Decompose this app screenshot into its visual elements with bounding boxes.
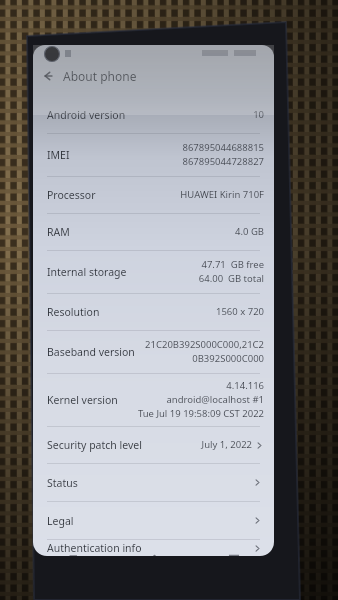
- button[interactable]: Authentication info: [33, 540, 274, 556]
- button[interactable]: RAM: [33, 214, 274, 250]
- staticText: Tue Jul 19 19:58:09 CST 2022: [137, 407, 264, 420]
- staticText: 867895044688815: [182, 141, 264, 154]
- staticText: About phone: [63, 68, 137, 84]
- staticText: Android version: [47, 108, 126, 122]
- staticText: Processor: [47, 188, 96, 202]
- staticText: HUAWEI Kirin 710F: [180, 188, 264, 201]
- staticText: 47.71 GB free: [201, 258, 264, 271]
- button[interactable]: Resolution: [33, 294, 274, 330]
- staticText: July 1, 2022: [201, 438, 252, 451]
- button[interactable]: Back: [33, 61, 63, 91]
- button[interactable]: Baseband version: [33, 331, 274, 373]
- staticText: 4.0 GB: [235, 225, 264, 238]
- staticText: Resolution: [47, 305, 100, 319]
- button[interactable]: IMEI: [33, 134, 274, 176]
- staticText: 1560 x 720: [215, 305, 264, 318]
- button[interactable]: Processor: [33, 177, 274, 213]
- button[interactable]: Legal: [33, 502, 274, 539]
- button[interactable]: Internal storage: [33, 251, 274, 293]
- staticText: Security patch level: [47, 438, 142, 452]
- staticText: android@localhost #1: [166, 393, 264, 406]
- staticText: Authentication info: [47, 541, 142, 555]
- staticText: 10: [253, 108, 264, 121]
- staticText: Kernel version: [47, 393, 118, 407]
- button[interactable]: Kernel version: [33, 374, 274, 426]
- staticText: 867895044728827: [182, 155, 264, 168]
- button[interactable]: Status: [33, 464, 274, 501]
- staticText: Legal: [47, 514, 74, 528]
- staticText: 64.00 GB total: [198, 272, 264, 285]
- staticText: Baseband version: [47, 345, 135, 359]
- staticText: 4.14.116: [226, 379, 264, 392]
- staticText: 0B392S000C000: [192, 352, 264, 365]
- staticText: IMEI: [47, 148, 70, 162]
- button[interactable]: Security patch level: [33, 427, 274, 463]
- button[interactable]: Android version: [33, 97, 274, 133]
- staticText: Status: [47, 476, 78, 490]
- staticText: 21C20B392S000C000,21C2: [145, 338, 264, 351]
- staticText: RAM: [47, 225, 70, 239]
- staticText: Internal storage: [47, 265, 127, 279]
